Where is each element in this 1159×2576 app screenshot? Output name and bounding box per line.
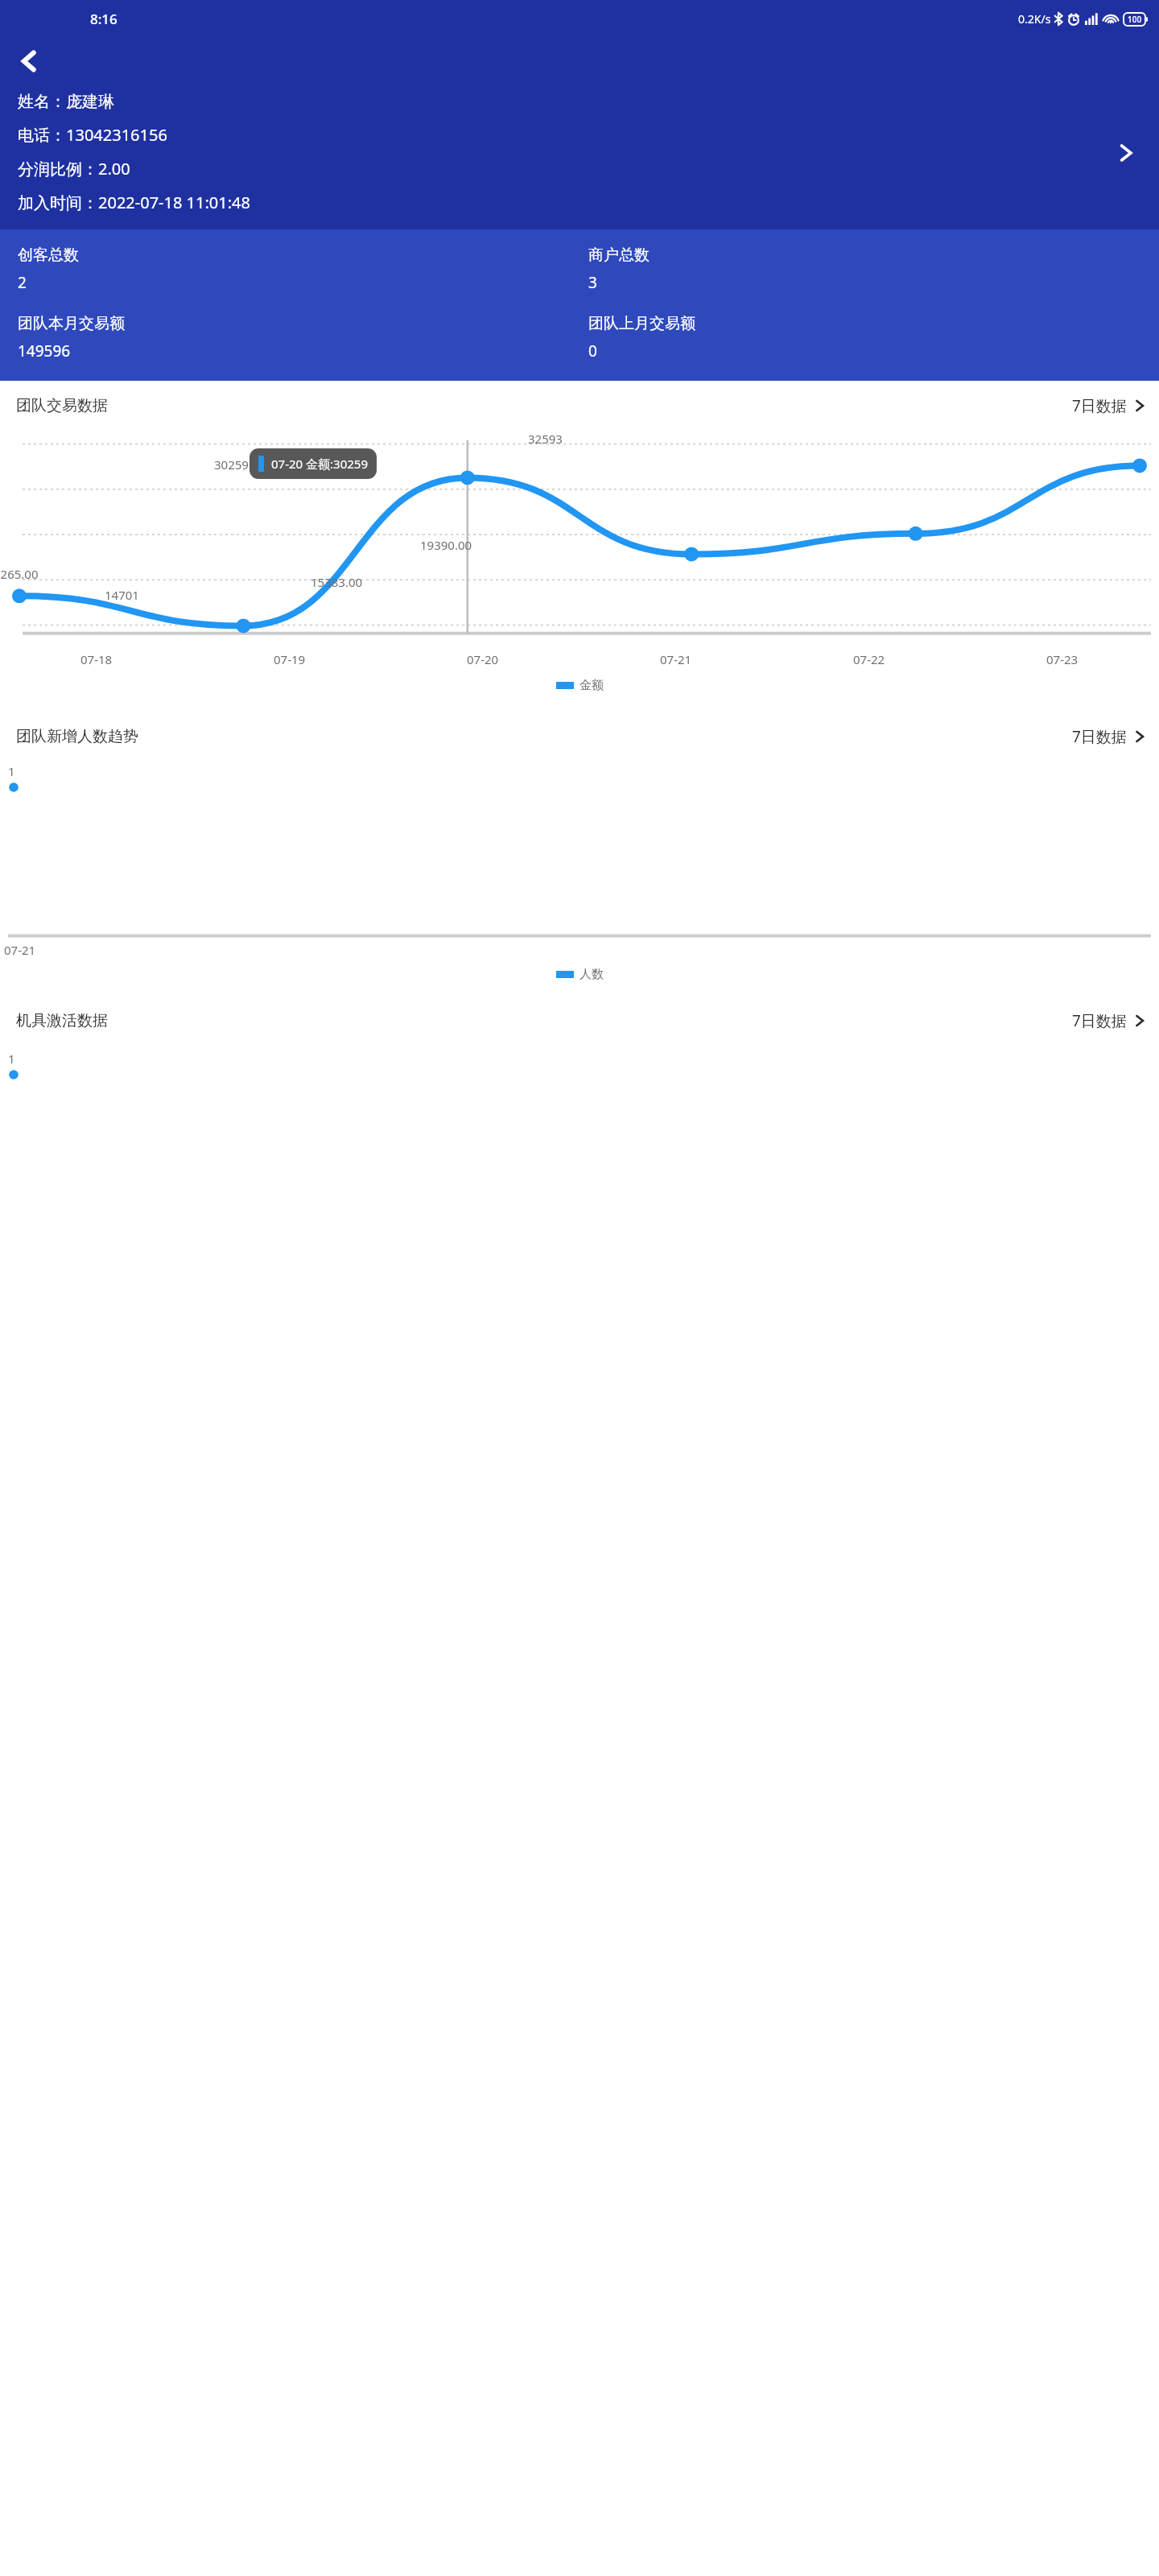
staticText: 0: [588, 341, 597, 361]
staticText: 149596: [18, 341, 71, 361]
staticText: 团队交易数据: [16, 396, 108, 415]
staticText: 商户总数: [588, 246, 650, 265]
staticText: 07-20: [467, 651, 499, 667]
staticText: 金额: [579, 678, 604, 693]
staticText: 30259: [214, 456, 249, 473]
staticText: 电话：13042316156: [18, 124, 167, 146]
staticText: 19390.00: [420, 537, 472, 553]
staticText: 7日数据: [1072, 395, 1127, 416]
staticText: 07-22: [853, 651, 885, 667]
staticText: 07-19: [274, 651, 306, 667]
button[interactable]: 姓名：庞建琳: [0, 92, 1159, 213]
staticText: 8:16: [90, 10, 118, 28]
staticText: 3: [588, 272, 597, 293]
staticText: 0.2K/s: [1018, 11, 1051, 27]
button[interactable]: Back: [8, 40, 50, 82]
staticText: 100: [1128, 14, 1142, 25]
staticText: 人数: [579, 967, 604, 982]
staticText: 07-21: [660, 651, 692, 667]
staticText: 创客总数: [18, 246, 79, 265]
staticText: 1: [8, 763, 15, 779]
staticText: 分润比例：2.00: [18, 158, 130, 180]
staticText: 团队本月交易额: [18, 314, 125, 333]
staticText: 2: [18, 272, 27, 293]
button[interactable]: 团队新增人数趋势: [0, 712, 1159, 762]
staticText: 32593: [528, 431, 563, 447]
staticText: 07-18: [80, 651, 113, 667]
staticText: 07-20 金额:30259: [271, 456, 368, 472]
staticText: 14701: [105, 587, 139, 603]
staticText: 7日数据: [1072, 1010, 1127, 1031]
staticText: 加入时间：2022-07-18 11:01:48: [18, 192, 250, 213]
button[interactable]: 团队交易数据: [0, 381, 1159, 431]
button[interactable]: 机具激活数据: [0, 996, 1159, 1046]
staticText: 姓名：庞建琳: [18, 92, 114, 112]
staticText: 7265.00: [0, 566, 39, 582]
staticText: 1: [8, 1051, 15, 1067]
staticText: 机具激活数据: [16, 1011, 108, 1030]
staticText: 07-21: [4, 942, 36, 958]
staticText: 07-23: [1046, 651, 1079, 667]
staticText: 7日数据: [1072, 726, 1127, 747]
staticText: 团队上月交易额: [588, 314, 695, 333]
staticText: 团队新增人数趋势: [16, 727, 138, 746]
staticText: 15383.00: [311, 574, 363, 590]
